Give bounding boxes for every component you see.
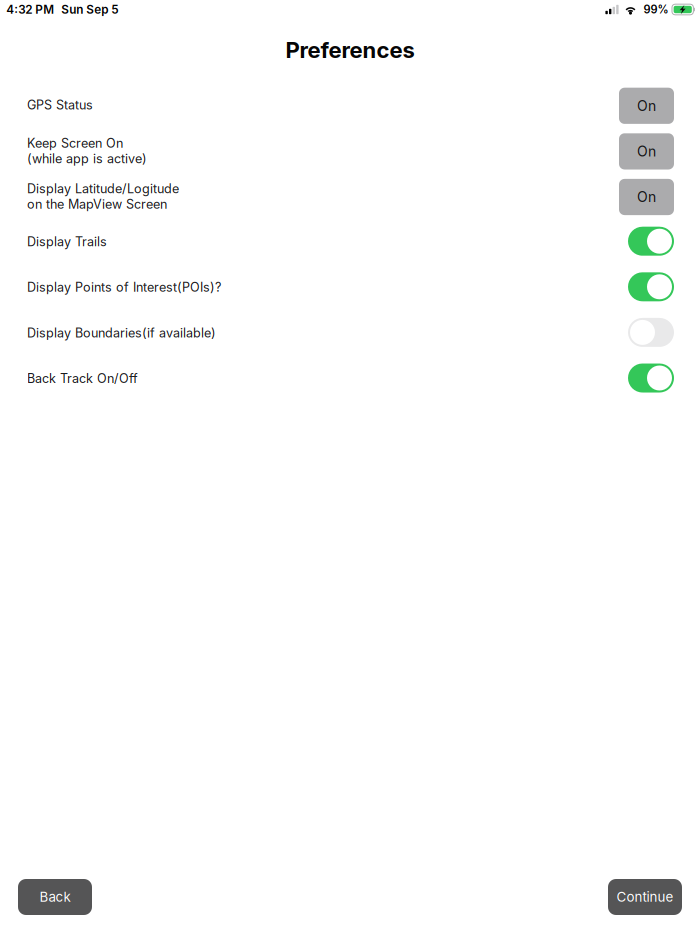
staticText: on the MapView Screen [27,196,167,212]
staticText: Sun Sep 5 [61,2,118,17]
button[interactable]: Display Latitude/Logitude, On [619,179,674,215]
button[interactable]: Display Trails, on [628,228,674,257]
staticText: GPS Status [27,97,93,112]
staticText: Display Latitude/Logitude [27,181,179,196]
staticText: (while app is active) [27,151,147,166]
staticText: 99% [643,3,668,16]
button[interactable]: Back [18,879,92,915]
button[interactable]: Back Track On/Off, on [628,365,674,394]
staticText: 4:32 PM [6,2,54,17]
staticText: Display Boundaries(if available) [27,325,216,340]
staticText: Display Points of Interest(POIs)? [27,280,221,295]
staticText: On [637,97,656,114]
staticText: Back [39,889,70,905]
button[interactable]: Keep Screen On, On [619,133,674,169]
staticText: On [637,143,656,160]
button[interactable]: Display Boundaries(if available), off [628,319,674,348]
staticText: Display Trails [27,234,107,249]
button[interactable]: GPS Status, On [619,88,674,124]
staticText: Keep Screen On [27,135,123,151]
button[interactable]: Display Points of Interest(POIs)?, on [628,274,674,302]
button[interactable]: Continue [608,879,682,915]
staticText: Continue [616,889,673,905]
staticText: Preferences [285,37,414,63]
staticText: On [637,188,656,205]
staticText: Back Track On/Off [27,371,138,386]
